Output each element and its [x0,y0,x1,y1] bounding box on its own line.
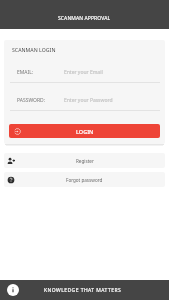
staticText: KNOWLEDGE THAT MATTERS [44,287,122,294]
button[interactable]: Register [4,153,165,168]
staticText: SCANMAN APPROVAL [58,15,111,22]
staticText: EMAIL: [17,69,34,76]
staticText: LOGIN [76,128,94,135]
staticText: Enter your Password [64,97,113,104]
staticText: Forgot password [66,177,103,183]
staticText: Register [76,158,94,164]
staticText: Enter your Email [64,69,103,76]
button[interactable]: Information [7,284,19,296]
staticText: PASSWORD: [17,97,46,104]
staticText: SCANMAN LOGIN [12,46,56,53]
button[interactable]: LOGIN [9,124,160,138]
button[interactable]: Forgot password [4,172,165,187]
